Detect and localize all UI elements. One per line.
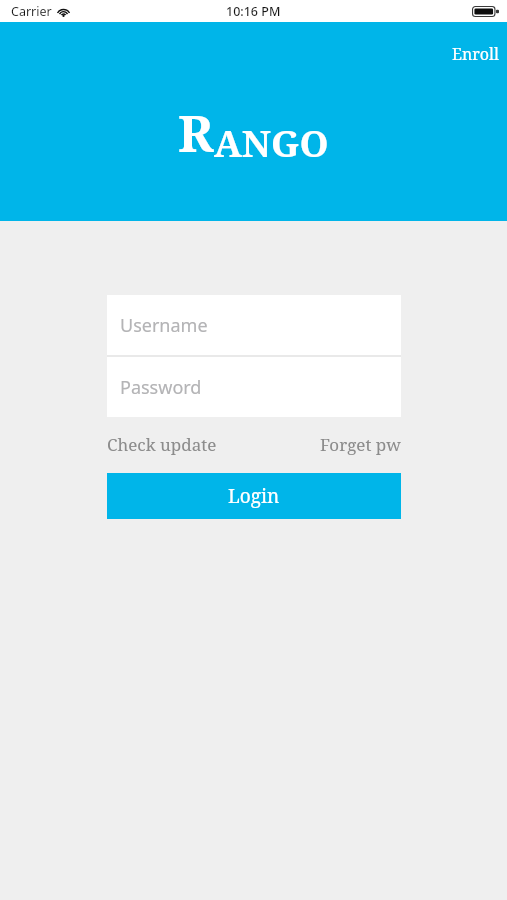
other: Battery full bbox=[472, 6, 499, 17]
staticText: Enroll bbox=[452, 43, 499, 65]
staticText: Forget pw bbox=[320, 433, 401, 456]
staticText: 10:16 PM bbox=[226, 3, 281, 20]
staticText: Carrier bbox=[11, 3, 52, 20]
staticText: Username bbox=[120, 313, 208, 338]
button[interactable]: Enroll bbox=[448, 40, 503, 68]
staticText: R bbox=[178, 99, 214, 167]
staticText: Password bbox=[120, 375, 202, 400]
button[interactable]: Username bbox=[107, 295, 401, 355]
button[interactable]: Forget pw bbox=[320, 429, 401, 460]
other: Wi-Fi signal bbox=[57, 7, 70, 17]
staticText: Check update bbox=[107, 433, 217, 456]
staticText: ANGO bbox=[214, 117, 329, 167]
button[interactable]: Password bbox=[107, 357, 401, 417]
button[interactable]: Login bbox=[107, 473, 401, 519]
button[interactable]: Check update bbox=[107, 429, 217, 460]
staticText: Login bbox=[228, 483, 280, 509]
